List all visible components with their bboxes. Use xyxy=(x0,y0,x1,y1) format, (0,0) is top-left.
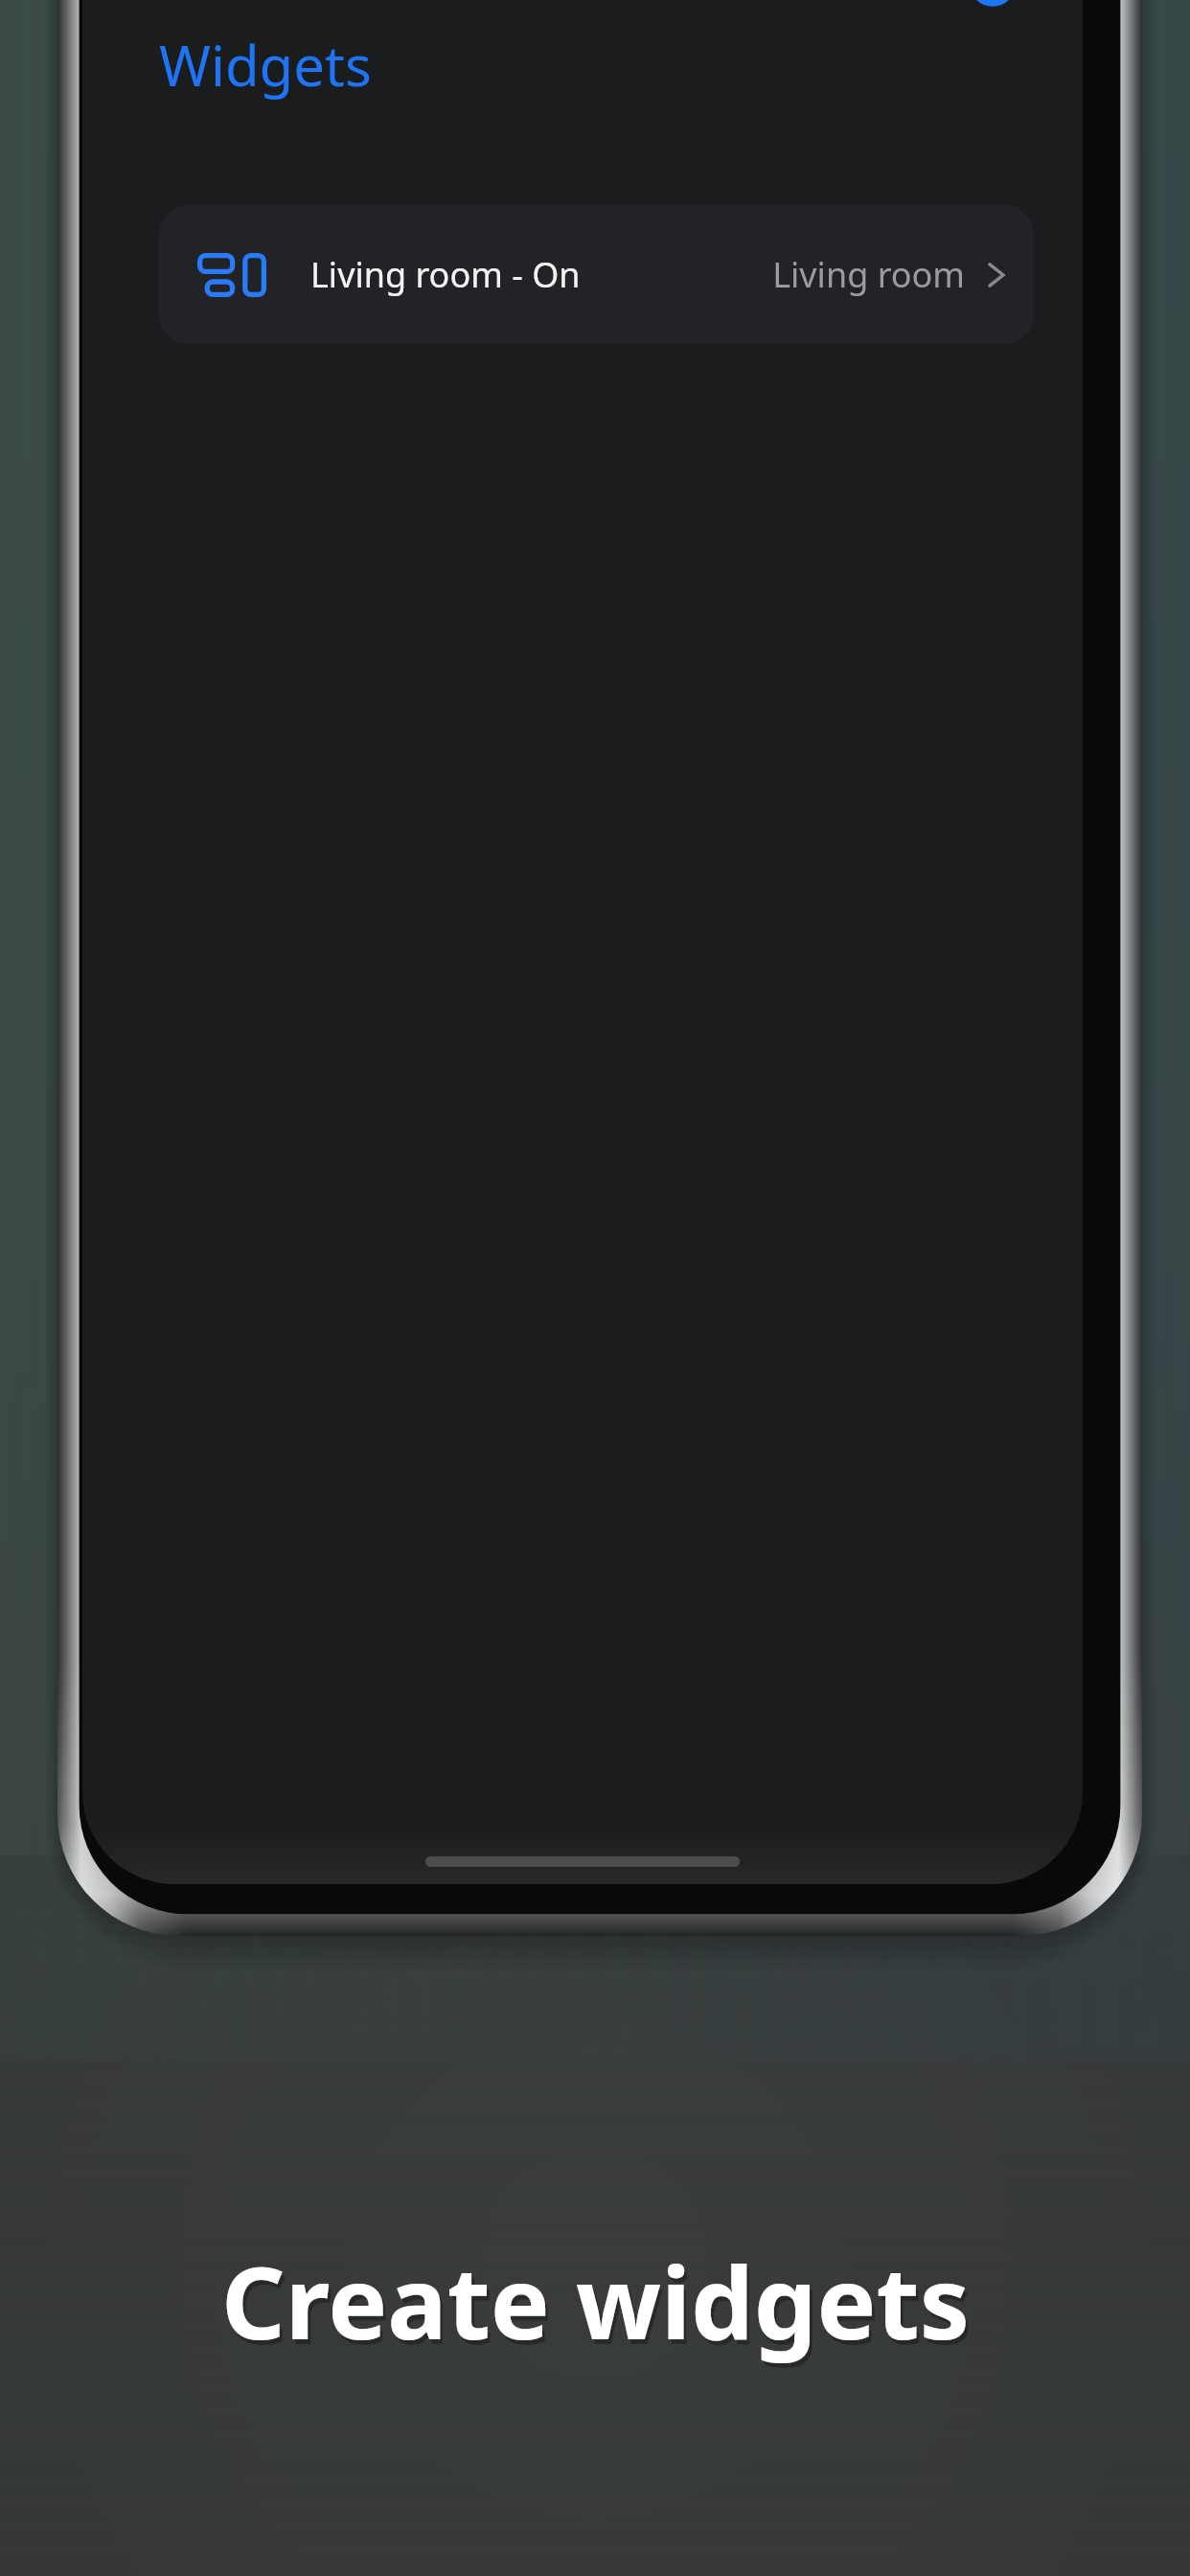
other: Open xyxy=(986,256,1007,294)
staticText: Living room xyxy=(772,251,965,298)
other: Widget preview xyxy=(197,253,266,297)
staticText: Create widgets xyxy=(224,2238,973,2374)
staticText: Create widgets xyxy=(221,2233,970,2369)
staticText: Living room - On xyxy=(310,251,581,298)
button[interactable]: Widget preview xyxy=(159,205,1034,344)
staticText: Widgets xyxy=(159,27,372,103)
